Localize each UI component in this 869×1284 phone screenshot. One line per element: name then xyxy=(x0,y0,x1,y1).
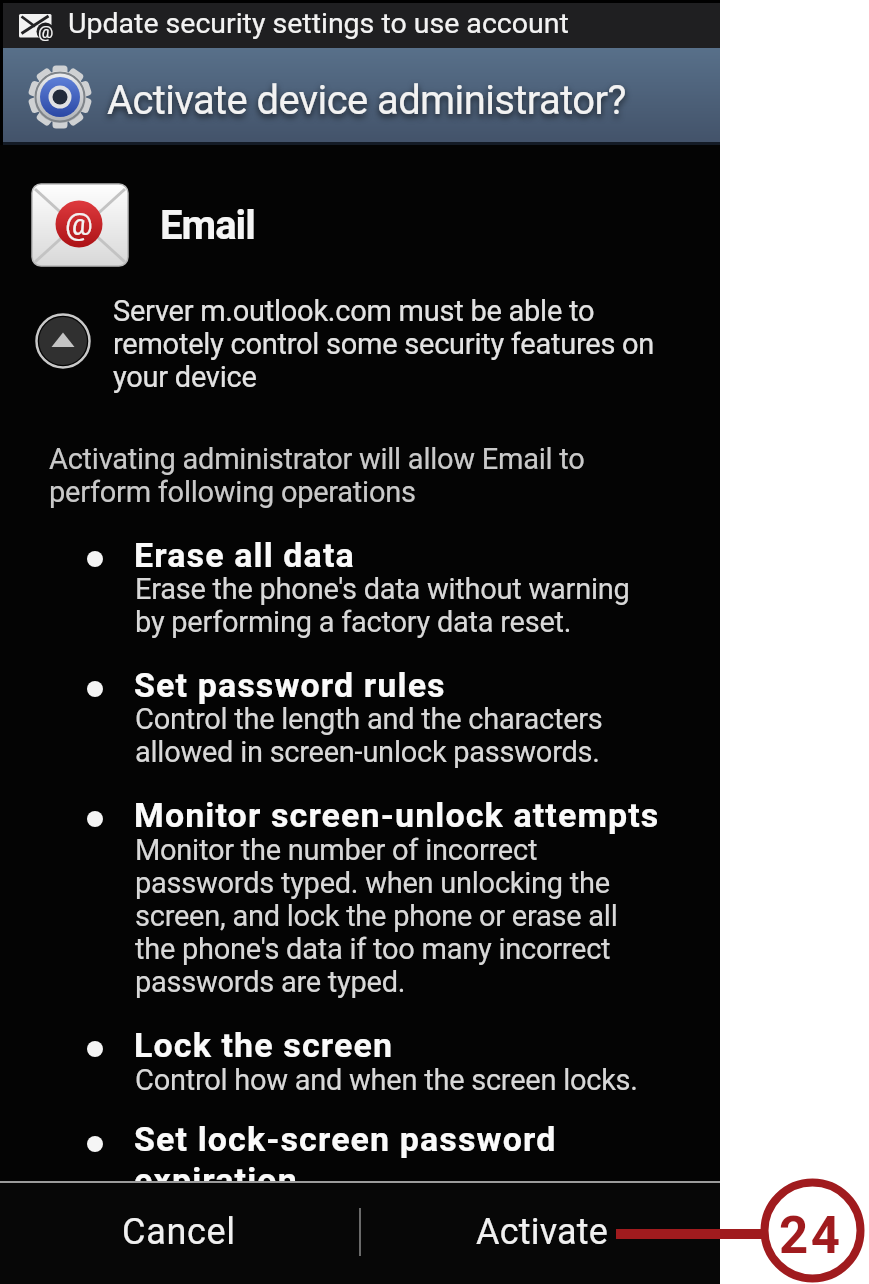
staticText: Set lock-screen password expiration xyxy=(134,1119,557,1181)
staticText: Erase all data xyxy=(134,535,355,575)
button[interactable] xyxy=(359,1183,720,1284)
staticText: Activate device administrator? xyxy=(107,77,626,124)
staticText: Monitor screen-unlock attempts xyxy=(134,795,660,835)
staticText: Server m.outlook.com must be able to rem… xyxy=(113,294,655,393)
staticText: Email xyxy=(160,202,255,249)
staticText: Erase the phone's data without warning b… xyxy=(135,573,630,639)
staticText: Monitor the number of incorrect password… xyxy=(135,834,618,999)
staticText: @ xyxy=(38,22,54,42)
staticText: Activate xyxy=(476,1211,609,1253)
staticText: Cancel xyxy=(122,1211,236,1253)
staticText: Control the length and the characters al… xyxy=(135,703,603,769)
button[interactable] xyxy=(35,313,91,369)
staticText: Lock the screen xyxy=(134,1025,394,1065)
staticText: @ xyxy=(65,206,93,242)
staticText: Set password rules xyxy=(134,665,446,705)
staticText: Update security settings to use account xyxy=(68,7,569,40)
button[interactable] xyxy=(0,1183,358,1284)
staticText: Activating administrator will allow Emai… xyxy=(49,442,585,508)
staticText: Control how and when the screen locks. xyxy=(135,1064,638,1097)
staticText: 24 xyxy=(779,1206,843,1266)
